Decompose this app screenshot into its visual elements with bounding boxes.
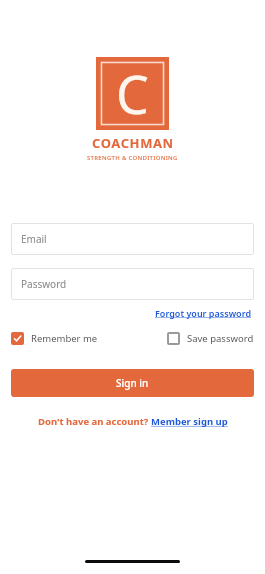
staticText: Remember me bbox=[31, 332, 98, 345]
staticText: Sign in bbox=[116, 376, 149, 390]
button[interactable]: Save password unchecked bbox=[167, 332, 254, 345]
staticText: Member sign up bbox=[151, 415, 228, 428]
button[interactable]: Forgot your password bbox=[153, 305, 254, 321]
button[interactable]: Remember me checked bbox=[11, 332, 98, 345]
button[interactable]: Sign in bbox=[11, 369, 254, 397]
staticText: Don't have an account? bbox=[38, 415, 151, 428]
other: Remember me checked bbox=[11, 332, 24, 345]
other: Save password unchecked bbox=[167, 332, 180, 345]
staticText: C bbox=[116, 58, 149, 129]
staticText: Forgot your password bbox=[155, 307, 252, 319]
staticText: Save password bbox=[187, 332, 254, 345]
staticText: STRENGTH & CONDITIONING bbox=[87, 154, 178, 162]
button[interactable]: Email bbox=[11, 223, 254, 255]
button[interactable]: Member sign up bbox=[151, 415, 228, 428]
staticText: Password bbox=[21, 277, 67, 291]
button[interactable]: Password bbox=[11, 268, 254, 300]
staticText: COACHMAN bbox=[92, 134, 174, 152]
staticText: Email bbox=[21, 232, 47, 246]
